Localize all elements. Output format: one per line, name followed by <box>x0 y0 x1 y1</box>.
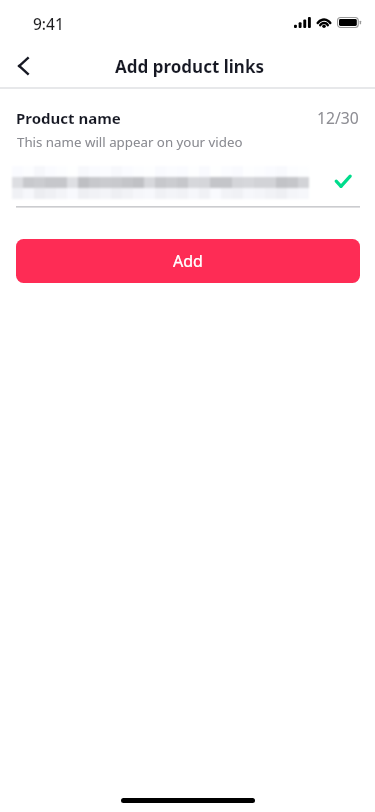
staticText: This name will appear on your video <box>17 133 243 151</box>
staticText: 9:41 <box>33 13 64 34</box>
button[interactable]: Back <box>6 44 40 88</box>
staticText: 12/30 <box>317 107 359 125</box>
staticText: Add <box>173 250 203 272</box>
staticText: Product name <box>16 108 121 128</box>
staticText: Add product links <box>115 55 264 78</box>
other: Valid <box>334 174 352 189</box>
button[interactable]: Add <box>16 239 360 283</box>
button[interactable]: Product name field <box>16 162 360 206</box>
